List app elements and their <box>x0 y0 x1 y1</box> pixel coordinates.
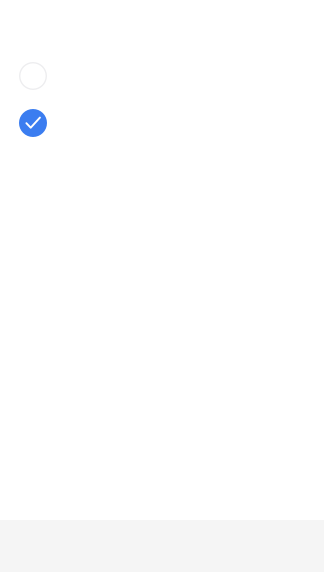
button[interactable]: Unchecked item <box>19 62 47 90</box>
button[interactable]: Checked item <box>19 109 47 137</box>
